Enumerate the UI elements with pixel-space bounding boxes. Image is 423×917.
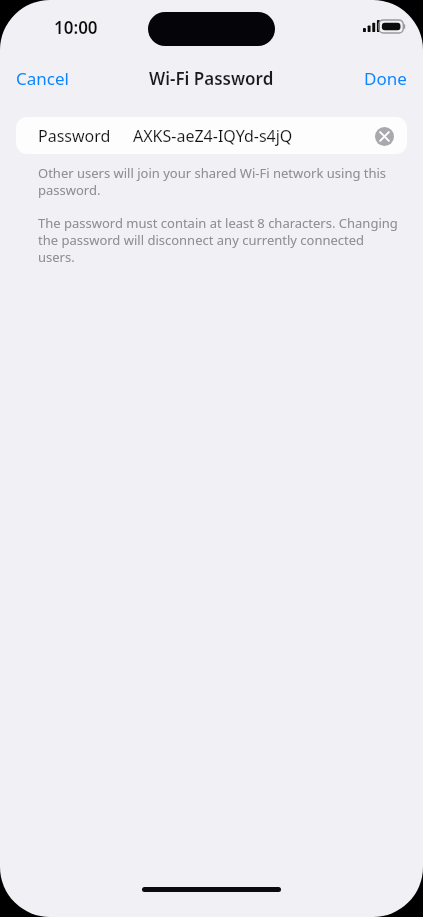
staticText: Password — [38, 125, 111, 147]
button[interactable]: Password — [16, 117, 407, 154]
staticText: Cancel — [16, 67, 69, 90]
button[interactable]: Done — [348, 59, 423, 98]
staticText: 10:00 — [54, 16, 98, 39]
staticText: AXKS-aeZ4-IQYd-s4jQ — [133, 125, 293, 147]
staticText: Other users will join your shared Wi-Fi … — [38, 164, 399, 199]
staticText: Wi-Fi Password — [149, 67, 274, 90]
button[interactable]: Cancel — [0, 59, 85, 98]
staticText: The password must contain at least 8 cha… — [38, 214, 399, 266]
button[interactable]: Clear text — [373, 125, 395, 147]
staticText: Done — [364, 67, 407, 90]
